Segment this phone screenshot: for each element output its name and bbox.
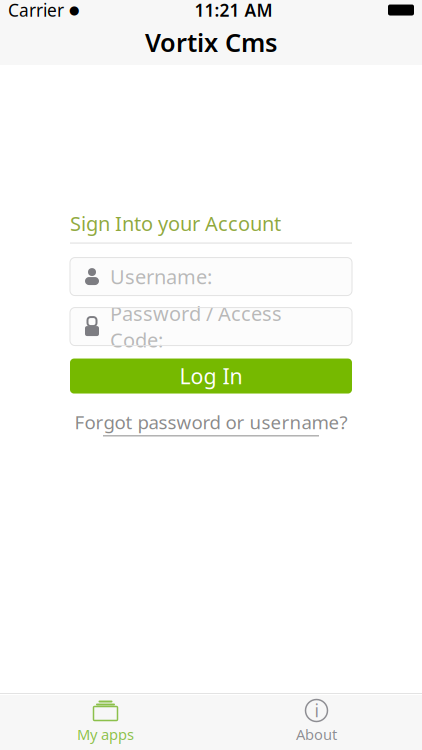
staticText: i [314, 699, 318, 722]
button[interactable]: Password / Access Code: [70, 308, 352, 346]
staticText: My apps [77, 724, 134, 744]
staticText: ● [69, 3, 79, 17]
staticText: Password / Access Code: [110, 300, 282, 353]
staticText: 11:21 AM [194, 0, 272, 21]
button[interactable]: My apps [0, 700, 211, 744]
staticText: Vortix Cms [145, 25, 277, 59]
button[interactable]: Forgot password or username? [74, 410, 347, 436]
staticText: Log In [179, 362, 242, 390]
staticText: About [296, 724, 337, 744]
button[interactable]: Log In [70, 359, 352, 394]
button[interactable]: Username: [70, 258, 352, 296]
staticText: Sign Into your Account [70, 210, 281, 237]
staticText: Forgot password or username? [74, 410, 347, 434]
staticText: Username: [110, 263, 212, 290]
staticText: Carrier [8, 0, 64, 21]
button[interactable]: About [211, 700, 422, 744]
